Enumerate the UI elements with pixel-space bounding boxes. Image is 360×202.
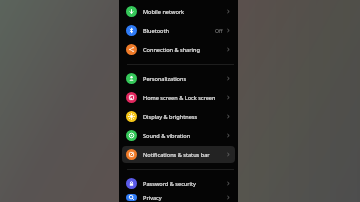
button[interactable]: BLUETOOTH — [122, 22, 235, 39]
button[interactable]: SOUND — [122, 127, 235, 144]
staticText: Off — [215, 27, 223, 34]
staticText: Privacy — [143, 194, 226, 201]
button[interactable]: MOBILE — [122, 3, 235, 20]
other: BLUETOOTH — [128, 27, 135, 34]
button[interactable]: NOTIF — [122, 146, 235, 163]
staticText: Personalizations — [143, 75, 226, 83]
other: LOCK — [128, 180, 135, 187]
other: HOME — [128, 94, 135, 101]
other: DISPLAY — [128, 113, 135, 120]
button[interactable]: LOCK — [122, 175, 235, 192]
other: NOTIF — [128, 151, 135, 158]
other: MOBILE — [128, 8, 135, 15]
other: PRIVACY — [128, 194, 135, 201]
other: SHARE — [128, 46, 135, 53]
staticText: Sound & vibration — [143, 132, 226, 140]
staticText: Bluetooth — [143, 27, 215, 35]
staticText: Mobile network — [143, 8, 226, 16]
other: PERSON — [128, 75, 135, 82]
staticText: Connection & sharing — [143, 46, 226, 54]
staticText: Home screen & Lock screen — [143, 94, 226, 102]
button[interactable]: PERSON — [122, 70, 235, 87]
button[interactable]: HOME — [122, 89, 235, 106]
other: SOUND — [128, 132, 135, 139]
button[interactable]: SHARE — [122, 41, 235, 58]
staticText: Password & security — [143, 180, 226, 188]
button[interactable]: DISPLAY — [122, 108, 235, 125]
button[interactable]: PRIVACY — [122, 194, 235, 201]
staticText: Display & brightness — [143, 113, 226, 121]
staticText: Notifications & status bar — [143, 151, 226, 159]
